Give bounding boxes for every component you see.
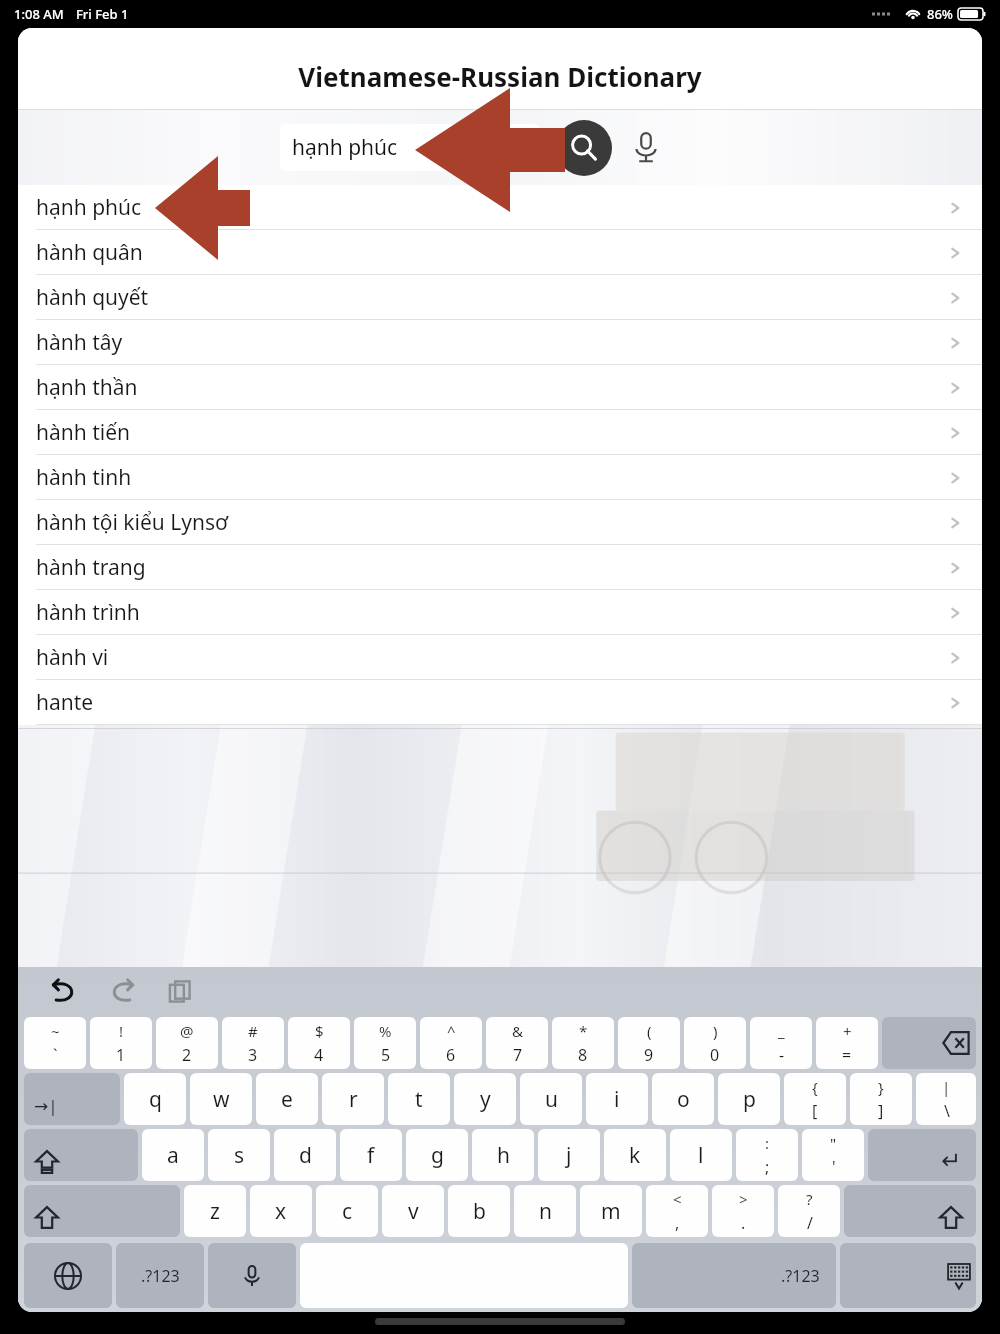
staticText: $ <box>315 1021 324 1041</box>
button[interactable]: l <box>670 1129 732 1181</box>
button[interactable]: .?123 <box>116 1243 204 1308</box>
button[interactable]: Shift <box>24 1185 180 1237</box>
button[interactable]: _ <box>750 1017 812 1069</box>
staticText: d <box>299 1141 312 1170</box>
button[interactable]: hạnh thần <box>18 365 982 410</box>
button[interactable]: u <box>520 1073 582 1125</box>
staticText: ↵ <box>941 1147 962 1175</box>
button[interactable]: t <box>388 1073 450 1125</box>
button[interactable]: Tab <box>24 1073 120 1125</box>
button[interactable]: g <box>406 1129 468 1181</box>
button[interactable]: hạnh phúc <box>280 124 540 171</box>
button[interactable]: i <box>586 1073 648 1125</box>
button[interactable]: y <box>454 1073 516 1125</box>
staticText: 9 <box>644 1044 654 1066</box>
button[interactable]: $ <box>288 1017 350 1069</box>
button[interactable]: d <box>274 1129 336 1181</box>
button[interactable]: s <box>208 1129 270 1181</box>
button[interactable]: hành quân <box>18 230 982 275</box>
button[interactable]: q <box>124 1073 186 1125</box>
button[interactable]: ) <box>684 1017 746 1069</box>
button[interactable]: x <box>250 1185 312 1237</box>
staticText: z <box>210 1197 220 1226</box>
button[interactable]: hành tinh <box>18 455 982 500</box>
button[interactable]: ! <box>90 1017 152 1069</box>
button[interactable]: " <box>802 1129 864 1181</box>
staticText: % <box>379 1021 392 1041</box>
button[interactable]: hành tội kiểu Lynsơ <box>18 500 982 545</box>
button[interactable]: % <box>354 1017 416 1069</box>
button[interactable]: ~ <box>24 1017 86 1069</box>
button[interactable]: hành trang <box>18 545 982 590</box>
button[interactable]: * <box>552 1017 614 1069</box>
button[interactable]: @ <box>156 1017 218 1069</box>
button[interactable]: w <box>190 1073 252 1125</box>
button[interactable]: } <box>850 1073 912 1125</box>
staticText: f <box>367 1141 375 1170</box>
staticText: .?123 <box>781 1265 820 1287</box>
button[interactable]: Redo <box>102 971 142 1011</box>
staticText: 2 <box>182 1044 192 1066</box>
button[interactable]: h <box>472 1129 534 1181</box>
button[interactable]: | <box>916 1073 976 1125</box>
button[interactable]: Dictation <box>208 1243 296 1308</box>
button[interactable]: hành quyết <box>18 275 982 320</box>
button[interactable]: e <box>256 1073 318 1125</box>
button[interactable]: Paste <box>160 971 200 1011</box>
button[interactable]: m <box>580 1185 642 1237</box>
button[interactable]: > <box>712 1185 774 1237</box>
button[interactable]: Search <box>556 120 612 176</box>
staticText: . <box>741 1212 746 1234</box>
staticText: 7 <box>513 1044 523 1066</box>
button[interactable]: a <box>142 1129 204 1181</box>
staticText: Fri Feb 1 <box>76 5 129 23</box>
staticText: 1:08 AM <box>14 5 64 23</box>
button[interactable]: k <box>604 1129 666 1181</box>
button[interactable]: z <box>184 1185 246 1237</box>
button[interactable]: j <box>538 1129 600 1181</box>
button[interactable]: hành trình <box>18 590 982 635</box>
button[interactable]: hành tiến <box>18 410 982 455</box>
staticText: x <box>275 1197 287 1226</box>
button[interactable]: Caps lock <box>24 1129 138 1181</box>
button[interactable]: hante <box>18 680 982 725</box>
button[interactable]: .?123 <box>632 1243 836 1308</box>
button[interactable]: & <box>486 1017 548 1069</box>
button[interactable]: r <box>322 1073 384 1125</box>
button[interactable]: { <box>784 1073 846 1125</box>
button[interactable]: hành tây <box>18 320 982 365</box>
button[interactable]: Backspace <box>882 1017 976 1069</box>
staticText: →| <box>34 1094 58 1117</box>
button[interactable]: < <box>646 1185 708 1237</box>
button[interactable]: hành vi <box>18 635 982 680</box>
button[interactable]: # <box>222 1017 284 1069</box>
staticText: m <box>601 1197 621 1226</box>
button[interactable]: hạnh phúc <box>18 185 982 230</box>
button[interactable]: ^ <box>420 1017 482 1069</box>
staticText: 1 <box>116 1044 126 1066</box>
button[interactable]: b <box>448 1185 510 1237</box>
button[interactable]: v <box>382 1185 444 1237</box>
staticText: ] <box>878 1100 884 1122</box>
button[interactable]: ? <box>778 1185 840 1237</box>
button[interactable]: p <box>718 1073 780 1125</box>
button[interactable]: + <box>816 1017 878 1069</box>
button[interactable]: Return <box>868 1129 976 1181</box>
staticText: 0 <box>710 1044 720 1066</box>
staticText: hành tinh <box>36 463 132 492</box>
button[interactable]: Change keyboard <box>24 1243 112 1308</box>
button[interactable]: ( <box>618 1017 680 1069</box>
staticText: ^ <box>447 1021 456 1041</box>
button[interactable]: Undo <box>44 971 84 1011</box>
button[interactable]: f <box>340 1129 402 1181</box>
button[interactable]: c <box>316 1185 378 1237</box>
button[interactable]: Shift <box>844 1185 976 1237</box>
button[interactable]: o <box>652 1073 714 1125</box>
staticText: y <box>480 1085 491 1114</box>
button[interactable]: n <box>514 1185 576 1237</box>
button[interactable]: Hide keyboard <box>840 1243 976 1308</box>
button[interactable]: : <box>736 1129 798 1181</box>
button[interactable]: Voice input <box>618 120 674 176</box>
